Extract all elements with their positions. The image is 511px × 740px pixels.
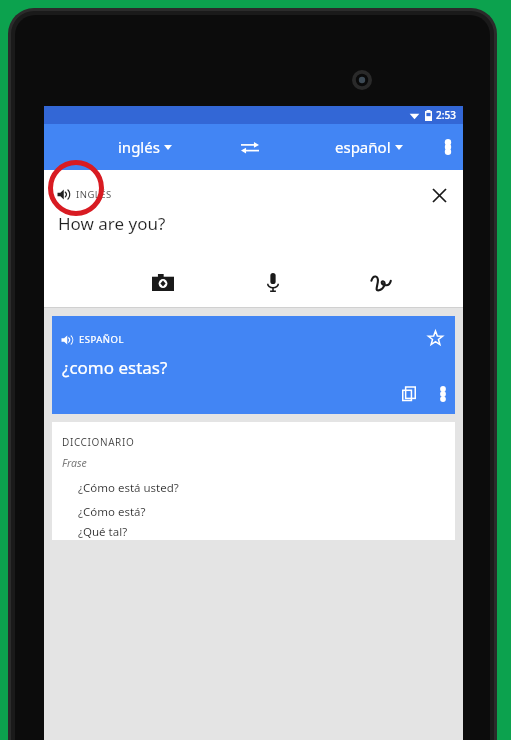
button[interactable]: More options: [432, 378, 454, 410]
button[interactable]: Copy: [394, 379, 424, 410]
button[interactable]: INGLÉS: [53, 184, 116, 205]
button[interactable]: More options: [433, 128, 463, 166]
button[interactable]: ¿Cómo está?: [52, 500, 455, 524]
button[interactable]: Handwriting input: [363, 266, 399, 299]
button[interactable]: ESPAÑOL: [57, 329, 128, 350]
staticText: español: [335, 137, 391, 157]
button[interactable]: Voice input: [259, 265, 287, 300]
staticText: ¿Qué tal?: [78, 524, 128, 540]
staticText: inglés: [118, 137, 160, 157]
staticText: ¿como estas?: [62, 356, 168, 379]
staticText: INGLÉS: [76, 188, 112, 201]
button[interactable]: Clear: [424, 180, 455, 211]
staticText: ¿Cómo está?: [78, 504, 146, 520]
button[interactable]: inglés: [110, 131, 180, 163]
button[interactable]: Camera input: [144, 266, 182, 299]
staticText: DICCIONARIO: [62, 435, 135, 449]
staticText: 2:53: [436, 108, 456, 122]
button[interactable]: Save translation: [421, 324, 450, 353]
button[interactable]: ¿Cómo está usted?: [52, 476, 455, 500]
button[interactable]: Swap languages: [231, 131, 269, 164]
staticText: ¿Cómo está usted?: [78, 480, 179, 496]
button[interactable]: español: [327, 131, 411, 163]
staticText: How are you?: [58, 212, 166, 235]
staticText: ESPAÑOL: [79, 333, 124, 346]
button[interactable]: ¿Qué tal?: [52, 524, 455, 540]
staticText: Frase: [62, 456, 87, 470]
button[interactable]: ESPAÑOL: [52, 316, 455, 414]
